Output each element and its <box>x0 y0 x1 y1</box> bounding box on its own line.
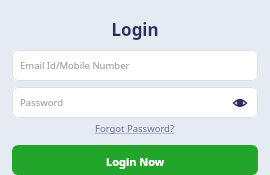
staticText: Login <box>12 18 258 41</box>
staticText: Forgot Password? <box>95 122 175 135</box>
staticText: Password <box>20 96 63 109</box>
button[interactable]: Show password <box>233 98 247 108</box>
staticText: Login Now <box>106 154 165 169</box>
button[interactable]: Forgot Password? <box>93 121 177 136</box>
staticText: Email Id/Mobile Number <box>20 59 130 72</box>
button[interactable]: Password <box>12 87 258 118</box>
button[interactable]: Login Now <box>12 145 258 175</box>
button[interactable]: Email Id/Mobile Number <box>12 50 258 81</box>
